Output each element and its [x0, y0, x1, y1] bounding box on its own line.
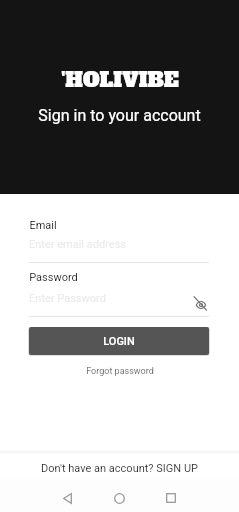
staticText: Password — [29, 271, 78, 284]
staticText: Enter email address — [29, 238, 126, 251]
button[interactable]: Forgot password — [80, 364, 160, 379]
staticText: Email — [29, 219, 57, 232]
staticText: Sign in to your account — [38, 106, 201, 125]
button[interactable]: Home — [103, 482, 135, 512]
button[interactable]: LOGIN — [29, 327, 209, 355]
button[interactable]: Show password — [192, 293, 208, 312]
button[interactable]: Recent apps — [155, 482, 187, 512]
staticText: Forgot password — [86, 366, 154, 377]
staticText: 'HOLIVIBE — [61, 65, 179, 94]
button[interactable]: Don't have an account? SIGN UP — [0, 455, 239, 481]
button[interactable]: Back — [51, 482, 83, 512]
staticText: LOGIN — [103, 335, 135, 348]
staticText: Enter Password — [29, 292, 106, 305]
staticText: Don't have an account? SIGN UP — [41, 462, 198, 475]
